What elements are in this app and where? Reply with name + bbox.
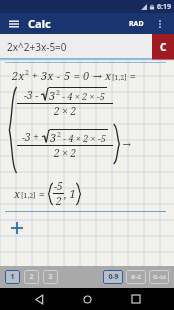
staticText: −3 +: [22, 130, 42, 144]
staticText: 2: [57, 130, 61, 140]
staticText: − 4 × 2 × −5: [61, 132, 106, 144]
staticText: 3: [48, 272, 53, 282]
staticText: −5: [54, 179, 63, 193]
staticText: 5: [64, 68, 71, 83]
staticText: →: [120, 137, 131, 151]
staticText: Calc: [28, 16, 51, 31]
button[interactable]: Recent apps: [126, 289, 146, 309]
staticText: 2 × 2: [54, 104, 76, 118]
button[interactable]: 2: [24, 270, 39, 284]
staticText: =: [36, 186, 48, 201]
staticText: =: [71, 68, 83, 83]
staticText: →: [90, 68, 105, 83]
staticText: [1,2]: [112, 73, 127, 83]
staticText: 2: [25, 68, 29, 78]
button[interactable]: a-z: [126, 270, 146, 284]
staticText: 2: [56, 194, 62, 208]
button[interactable]: 2x^2+3x-5=0: [0, 34, 152, 60]
staticText: RAD: [129, 19, 144, 29]
button[interactable]: Open navigation menu: [6, 16, 22, 32]
staticText: 2: [29, 272, 34, 282]
button[interactable]: C: [152, 34, 174, 60]
staticText: +: [29, 68, 41, 83]
staticText: x: [14, 186, 21, 201]
staticText: 2: [56, 88, 60, 98]
button[interactable]: Add new calculation: [8, 219, 26, 237]
button[interactable]: 1: [5, 270, 20, 284]
button[interactable]: 3: [43, 270, 58, 284]
staticText: 2x: [12, 68, 25, 83]
staticText: C: [160, 40, 167, 54]
staticText: 2 × 2: [54, 146, 76, 160]
staticText: [1,2]: [21, 191, 36, 201]
staticText: a-z: [131, 272, 141, 282]
staticText: =: [127, 68, 137, 83]
button[interactable]: Home: [77, 289, 97, 309]
staticText: 1: [10, 272, 15, 282]
button[interactable]: 0-9: [103, 270, 123, 284]
button[interactable]: Back: [29, 289, 49, 309]
button[interactable]: α-ω: [149, 270, 169, 284]
staticText: 3: [50, 130, 57, 145]
button[interactable]: RAD: [126, 17, 147, 31]
staticText: − 4 × 2 × −5: [60, 90, 105, 102]
staticText: x: [105, 68, 112, 83]
staticText: −: [54, 68, 64, 83]
staticText: 3: [49, 88, 56, 103]
staticText: 3x: [41, 68, 54, 83]
staticText: 0: [83, 68, 90, 83]
button[interactable]: More options: [152, 16, 168, 32]
staticText: 6:19: [157, 2, 171, 12]
staticText: α-ω: [153, 272, 166, 282]
staticText: , 1: [64, 186, 76, 201]
staticText: 0-9: [108, 272, 119, 282]
staticText: 2x^2+3x-5=0: [7, 40, 67, 54]
staticText: −3 −: [24, 88, 41, 102]
